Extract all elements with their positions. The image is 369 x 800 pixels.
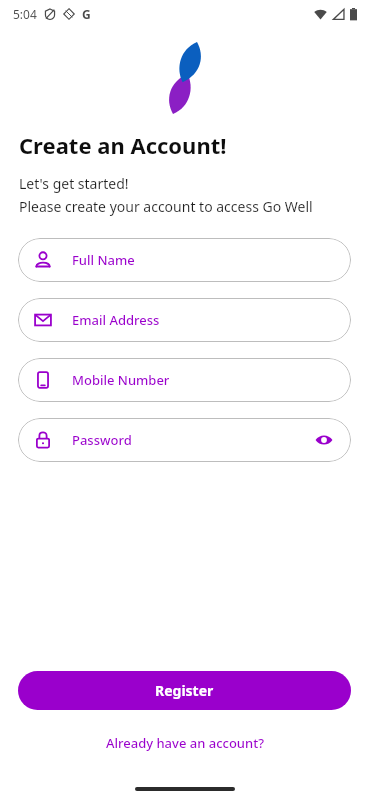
staticText: Full Name bbox=[72, 251, 335, 269]
button[interactable]: Register bbox=[18, 671, 351, 710]
staticText: Mobile Number bbox=[72, 371, 335, 389]
other: Password bbox=[34, 431, 52, 449]
button[interactable]: Already have an account? bbox=[0, 730, 369, 756]
staticText: Register bbox=[155, 681, 214, 700]
other: Mobile number bbox=[34, 371, 52, 389]
staticText: Please create your account to access Go … bbox=[19, 197, 313, 216]
other: Full name bbox=[34, 251, 52, 269]
staticText: Password bbox=[72, 431, 313, 449]
button[interactable]: Email address bbox=[18, 298, 351, 342]
button[interactable]: Mobile number bbox=[18, 358, 351, 402]
button[interactable]: Show password bbox=[313, 429, 335, 451]
staticText: 5:04 bbox=[13, 6, 37, 22]
button[interactable]: Full name bbox=[18, 238, 351, 282]
staticText: G bbox=[82, 6, 91, 22]
staticText: Already have an account? bbox=[106, 734, 264, 752]
other: Email address bbox=[34, 311, 52, 329]
staticText: Email Address bbox=[72, 311, 335, 329]
staticText: Create an Account! bbox=[19, 130, 227, 160]
button[interactable]: Password bbox=[18, 418, 351, 462]
staticText: Let's get started! bbox=[19, 174, 129, 193]
